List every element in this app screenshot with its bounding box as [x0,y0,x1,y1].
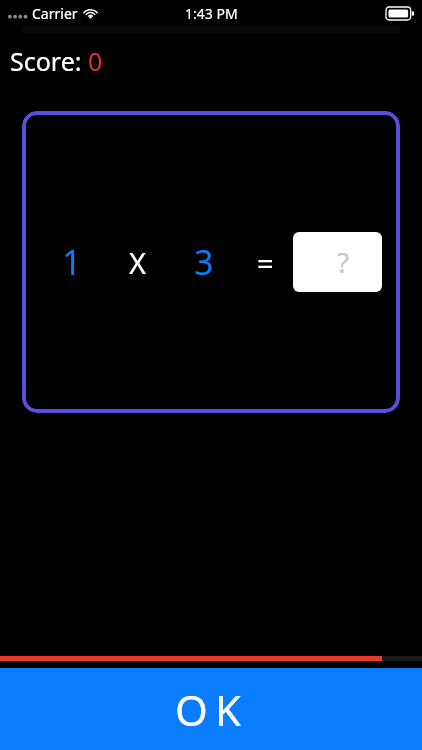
staticText: = [257,243,274,282]
staticText: OK [175,681,248,738]
staticText: Score: 0 [10,44,103,78]
other: Battery full [386,7,414,20]
staticText: 1:43 PM [185,4,238,23]
staticText: ? [337,243,350,281]
button[interactable]: 1 [22,111,400,413]
button[interactable]: Answer input [293,232,382,292]
staticText: 1 [62,239,82,285]
staticText: 3 [194,239,214,285]
staticText: Carrier [32,4,78,23]
staticText: X [129,243,146,282]
button[interactable]: OK [0,668,422,750]
